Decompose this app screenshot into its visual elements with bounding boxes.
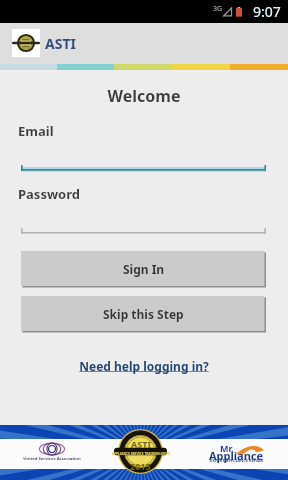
staticText: EXPERT APPLIANCE REPAIR [210, 458, 270, 463]
staticText: United Services Association [22, 456, 82, 462]
staticText: APPLIANCE SERVICE TRAINING INSTITUTE [112, 452, 170, 456]
staticText: Mr. [220, 442, 250, 454]
button[interactable]: Need help logging in? [0, 358, 288, 374]
staticText: Skip this Step [103, 306, 184, 322]
button[interactable]: Password field [21, 221, 266, 235]
staticText: Password [18, 185, 80, 203]
button[interactable]: Email field [21, 158, 266, 172]
button[interactable]: Sign In [21, 251, 266, 288]
staticText: 9:07 [253, 2, 281, 21]
staticText: ASTI [131, 438, 151, 450]
other: ASTI logo [12, 29, 40, 57]
staticText: Welcome [0, 85, 288, 107]
staticText: ASTI [45, 34, 76, 53]
staticText: 3G [213, 4, 223, 14]
staticText: Appliance [209, 448, 269, 463]
staticText: Sign In [123, 261, 165, 277]
button[interactable]: Skip this Step [21, 296, 266, 333]
staticText: Email [18, 122, 54, 140]
staticText: 2015 [130, 460, 151, 472]
